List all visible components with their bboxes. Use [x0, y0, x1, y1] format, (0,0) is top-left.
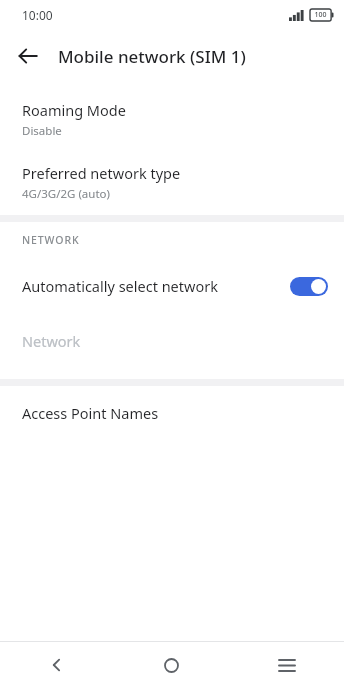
button[interactable]: Network	[0, 328, 344, 354]
staticText: Disable	[22, 123, 62, 139]
button[interactable]: Back	[0, 642, 114, 688]
button[interactable]: Back	[10, 38, 46, 74]
staticText: Network	[22, 331, 81, 351]
staticText: Automatically select network	[22, 276, 290, 296]
staticText: 4G/3G/2G (auto)	[22, 186, 110, 202]
button[interactable]: Preferred network type	[0, 161, 344, 204]
staticText: Mobile network (SIM 1)	[58, 45, 246, 68]
staticText: Access Point Names	[22, 403, 159, 423]
button[interactable]: Automatically select network	[0, 269, 344, 303]
button[interactable]: Recent apps	[229, 642, 344, 688]
staticText: 100	[314, 10, 327, 20]
staticText: Roaming Mode	[22, 100, 126, 120]
button[interactable]: Roaming Mode	[0, 98, 344, 141]
staticText: Preferred network type	[22, 163, 181, 183]
staticText: 10:00	[22, 7, 53, 23]
button[interactable]: Home	[114, 642, 229, 688]
staticText: NETWORK	[22, 233, 80, 247]
button[interactable]: Access Point Names	[0, 400, 344, 426]
